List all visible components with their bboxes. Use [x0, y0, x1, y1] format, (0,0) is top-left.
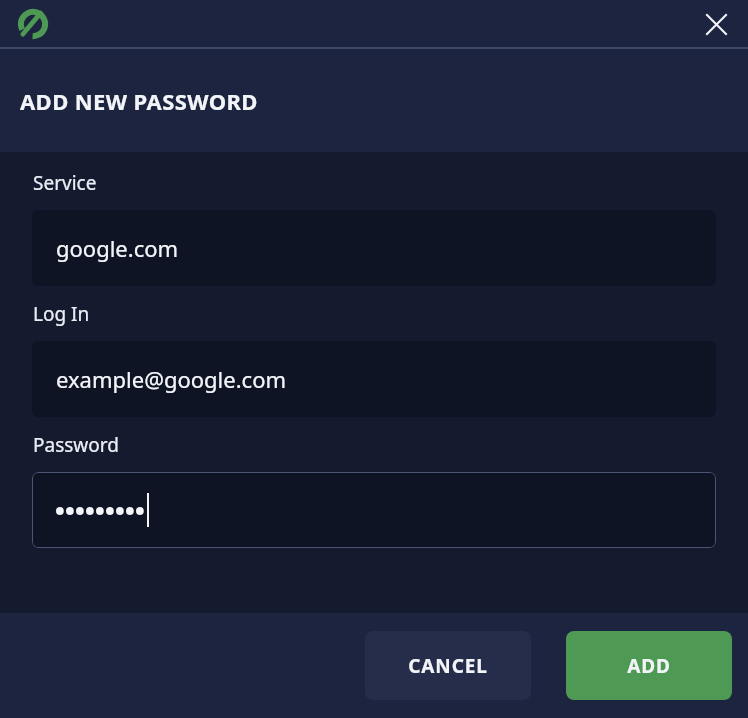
staticText: ADD NEW PASSWORD	[20, 86, 258, 116]
button[interactable]: CANCEL	[365, 631, 531, 700]
staticText: Password	[33, 432, 119, 458]
staticText: Log In	[33, 301, 90, 327]
staticText: Service	[33, 170, 97, 196]
staticText: example@google.com	[56, 364, 287, 394]
button[interactable]: google.com	[32, 210, 716, 286]
staticText: ADD	[627, 653, 671, 679]
button[interactable]: example@google.com	[32, 341, 716, 417]
staticText: CANCEL	[408, 653, 488, 679]
button[interactable]: Password	[32, 472, 716, 548]
button[interactable]: ADD	[566, 631, 732, 700]
button[interactable]: App logo	[16, 7, 50, 41]
staticText: google.com	[56, 233, 179, 263]
button[interactable]: Close	[696, 4, 736, 44]
